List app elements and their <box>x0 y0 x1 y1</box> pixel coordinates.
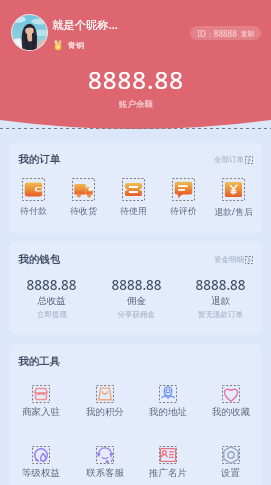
staticText: 我的收藏 <box>212 406 250 418</box>
staticText: 复制 <box>241 30 254 38</box>
staticText: 全部订单 <box>214 155 244 164</box>
staticText: 待付款 <box>20 206 47 217</box>
staticText: 我的钱包 <box>18 253 60 266</box>
staticText: 我的积分 <box>86 406 124 418</box>
staticText: 佣金 <box>127 295 146 307</box>
staticText: 总收益 <box>37 295 66 307</box>
button[interactable]: 待使用 <box>108 178 158 217</box>
staticText: 等级权益 <box>22 467 60 479</box>
button[interactable]: 联系客服 <box>73 446 136 479</box>
staticText: 我的工具 <box>18 355 60 368</box>
button[interactable]: 待收货 <box>58 178 108 217</box>
staticText: 商家入驻 <box>22 406 60 418</box>
button[interactable]: 退款/售后 <box>208 178 258 218</box>
staticText: 待收货 <box>70 206 97 217</box>
staticText: 账户余额 <box>119 99 153 110</box>
button[interactable]: 8888.88 <box>94 276 178 319</box>
button[interactable]: 我的地址 <box>136 385 199 418</box>
staticText: 8888.88 <box>88 63 184 96</box>
button[interactable]: 等级权益 <box>9 446 73 479</box>
staticText: 青铜 <box>68 40 84 50</box>
button[interactable]: 待付款 <box>9 178 58 217</box>
button[interactable]: Avatar <box>11 14 48 51</box>
staticText: 联系客服 <box>86 467 124 479</box>
button[interactable]: 8888.88 <box>178 276 262 319</box>
button[interactable]: 资金明细 <box>214 255 253 264</box>
button[interactable]: 全部订单 <box>214 155 253 164</box>
button[interactable]: 设置 <box>199 446 262 479</box>
button[interactable]: 我的积分 <box>73 385 136 418</box>
staticText: 8888.88 <box>111 276 162 294</box>
staticText: 设置 <box>221 467 240 479</box>
staticText: 我的地址 <box>149 406 187 418</box>
button[interactable]: 8888.88 <box>9 276 94 319</box>
button[interactable]: 商家入驻 <box>9 385 73 418</box>
button[interactable]: ID：88888 <box>190 26 261 40</box>
button[interactable]: 推广名片 <box>136 446 199 479</box>
staticText: 我的订单 <box>18 153 60 166</box>
staticText: 待使用 <box>120 206 147 217</box>
staticText: 暂无退款订单 <box>198 310 243 319</box>
staticText: 资金明细 <box>214 255 244 264</box>
staticText: 就是个昵称... <box>52 17 118 32</box>
staticText: 退款 <box>211 295 230 307</box>
staticText: 分享获佣金 <box>117 310 155 319</box>
staticText: 待评价 <box>170 206 197 217</box>
button[interactable]: 我的收藏 <box>199 385 262 418</box>
staticText: 推广名片 <box>149 467 187 479</box>
staticText: 立即提现 <box>37 310 67 319</box>
staticText: 8888.88 <box>195 276 246 294</box>
staticText: ID：88888 <box>197 28 237 39</box>
staticText: 8888.88 <box>26 276 77 294</box>
staticText: 退款/售后 <box>214 206 253 218</box>
button[interactable]: 待评价 <box>158 178 208 217</box>
